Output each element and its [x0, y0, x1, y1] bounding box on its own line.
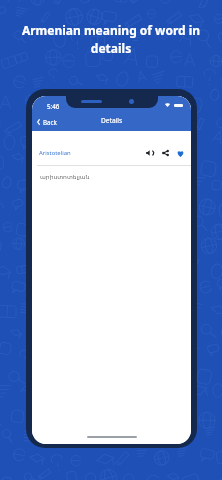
button[interactable]: Favourite [177, 150, 184, 157]
staticText: Aristotelian [39, 149, 71, 157]
button[interactable]: Share [162, 150, 169, 156]
staticText: 5:46 [47, 102, 60, 110]
button[interactable]: Pronounce [146, 150, 154, 156]
staticText: Back [43, 118, 57, 126]
button[interactable]: Back [32, 116, 63, 128]
staticText: Armenian meaning of word in details [12, 22, 210, 56]
staticText: արիստոտելյան [40, 173, 90, 180]
staticText: Details [101, 116, 123, 125]
